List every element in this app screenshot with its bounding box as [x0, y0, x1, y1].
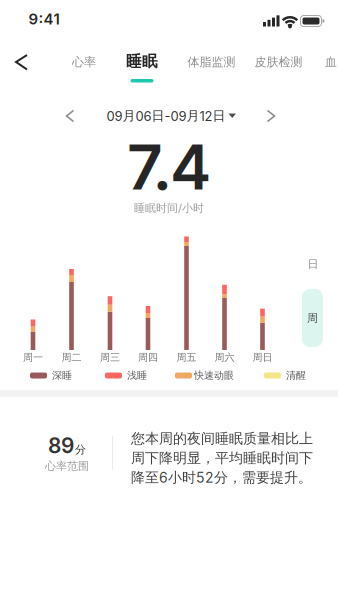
button[interactable] [261, 106, 281, 126]
staticText: 心率 [72, 54, 96, 69]
button[interactable]: 周 [302, 289, 323, 347]
staticText: 周日 [252, 351, 272, 364]
button[interactable]: 皮肤检测 [243, 52, 313, 72]
staticText: 睡眠 [126, 51, 158, 71]
staticText: 周五 [176, 351, 196, 364]
staticText: 周 [307, 311, 318, 325]
staticText: 分 [75, 443, 86, 457]
staticText: 血 [325, 54, 337, 69]
button[interactable]: 日 [302, 256, 323, 272]
button[interactable] [60, 106, 80, 126]
staticText: 浅睡 [127, 369, 147, 382]
staticText: 89 [48, 433, 74, 458]
button[interactable] [0, 48, 44, 76]
button[interactable]: 09月06日-09月12日 [91, 106, 251, 126]
button[interactable]: 血 [324, 52, 338, 72]
staticText: 周下降明显，平均睡眠时间下 [131, 449, 313, 467]
button[interactable]: 睡眠 [112, 51, 172, 82]
staticText: 周三 [100, 351, 120, 364]
staticText: 周二 [61, 351, 81, 364]
staticText: 快速动眼 [194, 369, 234, 382]
staticText: 心率范围 [45, 459, 89, 473]
staticText: 体脂监测 [187, 54, 235, 69]
staticText: 降至6小时52分，需要提升。 [131, 469, 312, 486]
staticText: 皮肤检测 [254, 54, 302, 69]
staticText: 日 [307, 257, 318, 271]
staticText: 9:41 [28, 10, 59, 28]
staticText: 深睡 [52, 369, 72, 382]
button[interactable]: 体脂监测 [176, 52, 246, 72]
staticText: 清醒 [286, 369, 306, 382]
staticText: 睡眠时间/小时 [134, 201, 204, 215]
staticText: 周六 [214, 351, 234, 364]
staticText: 周四 [138, 351, 158, 364]
staticText: 您本周的夜间睡眠质量相比上 [131, 430, 313, 447]
staticText: 09月06日-09月12日 [106, 108, 225, 124]
staticText: 7.4 [127, 129, 211, 204]
staticText: 周一 [23, 351, 43, 364]
button[interactable]: 心率 [54, 52, 114, 72]
